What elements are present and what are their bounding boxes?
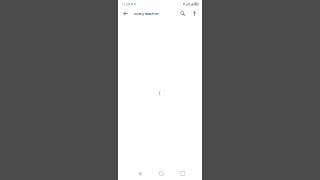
staticText: scary teacher	[134, 11, 159, 16]
button[interactable]: Recent apps	[172, 169, 194, 178]
button[interactable]: Home	[151, 169, 172, 178]
button[interactable]: Back	[120, 8, 131, 19]
button[interactable]: Voice search	[189, 8, 200, 19]
staticText: 11:04	[121, 1, 130, 7]
button[interactable]: Search	[178, 8, 189, 19]
button[interactable]: Back	[129, 169, 151, 178]
button[interactable]: scary teacher	[131, 8, 178, 19]
